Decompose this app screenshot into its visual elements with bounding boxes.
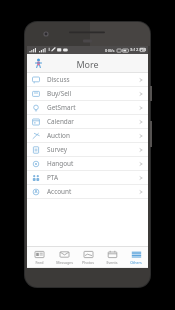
staticText: Hangout — [47, 159, 139, 168]
staticText: 0 B/s — [105, 48, 115, 53]
button[interactable]: Auction — [27, 129, 148, 142]
staticText: Messages — [56, 260, 73, 265]
staticText: Events — [106, 260, 118, 265]
staticText: Survey — [47, 145, 139, 154]
staticText: PTA — [47, 173, 139, 182]
button[interactable]: Others — [124, 247, 148, 267]
button[interactable]: Calendar — [27, 115, 148, 128]
button[interactable]: GetSmart — [27, 101, 148, 114]
staticText: Buy/Sell — [47, 89, 139, 98]
staticText: Auction — [47, 131, 139, 140]
button[interactable]: Photos — [76, 247, 100, 267]
button[interactable]: Survey — [27, 143, 148, 156]
staticText: Others — [130, 260, 142, 265]
button[interactable]: Buy/Sell — [27, 87, 148, 100]
button[interactable]: App logo — [32, 57, 45, 70]
button[interactable]: Events — [100, 247, 124, 267]
staticText: Discuss — [47, 75, 139, 84]
staticText: Calendar — [47, 117, 139, 126]
staticText: More — [76, 58, 99, 70]
staticText: Account — [47, 187, 139, 196]
button[interactable]: Discuss — [27, 73, 148, 86]
button[interactable]: Feed — [27, 247, 52, 267]
staticText: GetSmart — [47, 103, 139, 112]
button[interactable]: Account — [27, 185, 148, 198]
staticText: Feed — [35, 260, 44, 265]
staticText: 3:12 PM — [130, 47, 146, 53]
button[interactable]: PTA — [27, 171, 148, 184]
staticText: Photos — [82, 260, 94, 265]
button[interactable]: Messages — [52, 247, 76, 267]
button[interactable]: Hangout — [27, 157, 148, 170]
